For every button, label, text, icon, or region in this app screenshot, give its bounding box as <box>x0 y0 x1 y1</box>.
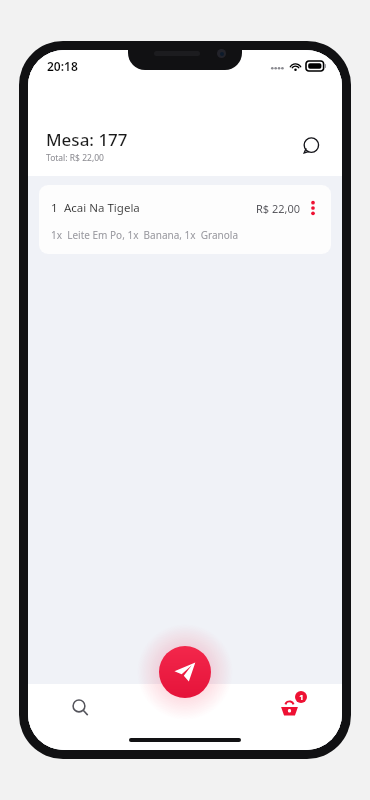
button[interactable]: Search <box>28 684 132 730</box>
staticText: 1x Leite Em Po, 1x Banana, 1x Granola <box>51 228 239 242</box>
staticText: 20:18 <box>47 58 78 74</box>
button[interactable]: Chat <box>296 131 326 161</box>
staticText: Total: R$ 22,00 <box>46 152 104 164</box>
staticText: Mesa: 177 <box>46 128 128 151</box>
button[interactable]: Cart, 1 item <box>237 684 342 730</box>
staticText: R$ 22,00 <box>256 201 301 216</box>
staticText: Acai Na Tigela <box>64 200 256 216</box>
button[interactable]: 1 <box>39 185 331 254</box>
staticText: 1 <box>299 692 304 702</box>
staticText: 1 <box>51 200 58 216</box>
button[interactable]: Send order <box>159 646 211 698</box>
button[interactable]: More options <box>301 196 325 220</box>
